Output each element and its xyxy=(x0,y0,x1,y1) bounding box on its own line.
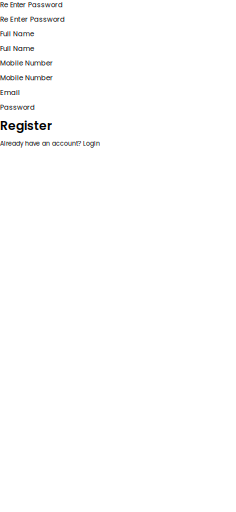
staticText: Mobile Number xyxy=(0,58,53,68)
staticText: Mobile Number xyxy=(0,73,53,83)
staticText: Re Enter Password xyxy=(0,0,63,9)
staticText: Password xyxy=(0,102,35,112)
staticText: Email xyxy=(0,88,20,97)
staticText: Register xyxy=(0,117,52,134)
staticText: Already have an account? Login xyxy=(0,139,100,148)
staticText: Full Name xyxy=(0,29,34,39)
staticText: Re Enter Password xyxy=(0,14,65,24)
staticText: Full Name xyxy=(0,44,34,53)
